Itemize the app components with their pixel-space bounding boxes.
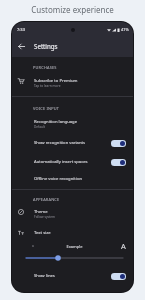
- button[interactable]: Recognition language: [12, 116, 133, 130]
- staticText: Show recognition variants: [34, 140, 86, 146]
- staticText: VOICE INPUT: [33, 106, 60, 111]
- staticText: PURCHASES: [33, 65, 57, 70]
- staticText: a: [32, 244, 34, 248]
- staticText: A: [121, 241, 126, 251]
- staticText: Subscribe to Premium: [34, 78, 78, 84]
- staticText: Tap to learn more: [34, 84, 61, 88]
- staticText: Show lines: [34, 273, 55, 279]
- staticText: Customize experience: [0, 4, 145, 15]
- button[interactable]: Show recognition variants: [12, 137, 133, 149]
- staticText: Example: [14, 244, 133, 249]
- staticText: Automatically insert spaces: [34, 159, 88, 165]
- button[interactable]: Text size: [12, 253, 133, 263]
- staticText: Follow system: [34, 215, 56, 219]
- staticText: Offline voice recognition: [34, 176, 83, 182]
- button[interactable]: Back: [13, 38, 29, 54]
- staticText: Text size: [34, 230, 51, 236]
- staticText: Default: [34, 125, 45, 129]
- staticText: 41%: [121, 27, 129, 32]
- button[interactable]: Automatically insert spaces: [12, 156, 133, 168]
- staticText: Settings: [34, 42, 58, 50]
- staticText: APPEARANCE: [33, 197, 60, 202]
- staticText: Recognition language: [34, 119, 78, 125]
- staticText: 7:33: [17, 27, 25, 32]
- button[interactable]: Text size: [12, 227, 133, 239]
- button[interactable]: Offline voice recognition: [12, 173, 133, 185]
- button[interactable]: Show lines: [12, 270, 133, 282]
- staticText: Theme: [34, 209, 48, 215]
- button[interactable]: Theme: [12, 206, 133, 220]
- button[interactable]: Subscribe to Premium: [12, 75, 133, 89]
